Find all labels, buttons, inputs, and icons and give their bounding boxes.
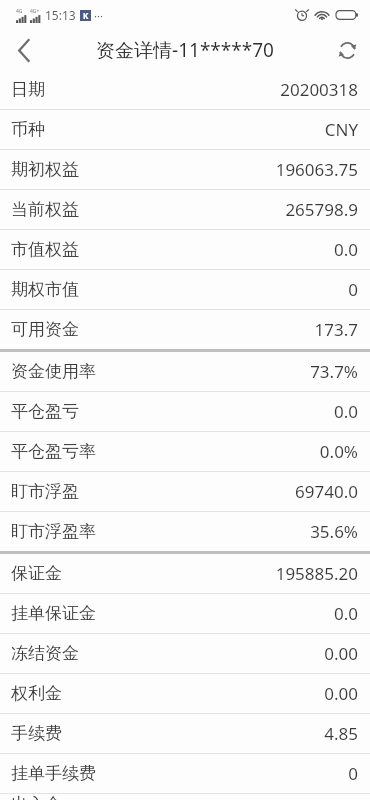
staticText: 币种: [11, 119, 45, 140]
button[interactable]: 挂单保证金: [0, 594, 370, 633]
staticText: 73.7%: [310, 360, 358, 383]
staticText: 0: [348, 278, 358, 301]
staticText: 挂单手续费: [11, 763, 96, 784]
staticText: 0.0: [333, 400, 358, 423]
staticText: 平仓盈亏: [11, 401, 79, 422]
button[interactable]: 盯市浮盈率: [0, 512, 370, 551]
staticText: 0.0: [333, 602, 358, 625]
button[interactable]: 期权市值: [0, 270, 370, 309]
button[interactable]: 市值权益: [0, 230, 370, 269]
staticText: 市值权益: [11, 239, 79, 260]
staticText: ···: [94, 8, 103, 23]
staticText: 出入金: [11, 794, 62, 800]
staticText: 0.0%: [319, 440, 358, 463]
button[interactable]: 出入金: [0, 794, 370, 800]
staticText: 35.6%: [310, 520, 358, 543]
staticText: K: [83, 10, 89, 21]
staticText: 日期: [11, 79, 45, 100]
staticText: 15:13: [45, 7, 76, 23]
staticText: 0.00: [324, 682, 358, 705]
button[interactable]: 冻结资金: [0, 634, 370, 673]
staticText: 4G+: [30, 8, 40, 15]
button[interactable]: 平仓盈亏: [0, 392, 370, 431]
staticText: 平仓盈亏率: [11, 441, 96, 462]
staticText: 4.85: [324, 722, 358, 745]
button[interactable]: 平仓盈亏率: [0, 432, 370, 471]
staticText: 期初权益: [11, 159, 79, 180]
staticText: 资金详情-11*****70: [96, 37, 274, 63]
button[interactable]: 挂单手续费: [0, 754, 370, 793]
staticText: 可用资金: [11, 319, 79, 340]
staticText: 冻结资金: [11, 643, 79, 664]
staticText: 173.7: [314, 318, 358, 341]
button[interactable]: Refresh: [324, 30, 370, 70]
button[interactable]: 日期: [0, 70, 370, 109]
button[interactable]: 保证金: [0, 554, 370, 593]
button[interactable]: 权利金: [0, 674, 370, 713]
staticText: 挂单保证金: [11, 603, 96, 624]
button[interactable]: 币种: [0, 110, 370, 149]
staticText: 196063.75: [275, 158, 358, 181]
staticText: 0.0: [333, 238, 358, 261]
staticText: 盯市浮盈: [11, 481, 79, 502]
staticText: 69740.0: [295, 480, 358, 503]
staticText: 4G: [16, 8, 23, 15]
staticText: 0.00: [324, 642, 358, 665]
staticText: 保证金: [11, 563, 62, 584]
staticText: 0: [348, 762, 358, 785]
button[interactable]: Back: [0, 30, 48, 70]
staticText: 期权市值: [11, 279, 79, 300]
staticText: 手续费: [11, 723, 62, 744]
staticText: CNY: [324, 118, 358, 141]
staticText: 资金使用率: [11, 361, 96, 382]
button[interactable]: 盯市浮盈: [0, 472, 370, 511]
staticText: 盯市浮盈率: [11, 521, 96, 542]
button[interactable]: 手续费: [0, 714, 370, 753]
staticText: 权利金: [11, 683, 62, 704]
staticText: 265798.9: [285, 198, 358, 221]
staticText: 20200318: [280, 78, 358, 101]
button[interactable]: 资金使用率: [0, 352, 370, 391]
button[interactable]: 期初权益: [0, 150, 370, 189]
staticText: 当前权益: [11, 199, 79, 220]
button[interactable]: 可用资金: [0, 310, 370, 349]
button[interactable]: 当前权益: [0, 190, 370, 229]
staticText: 195885.20: [275, 562, 358, 585]
